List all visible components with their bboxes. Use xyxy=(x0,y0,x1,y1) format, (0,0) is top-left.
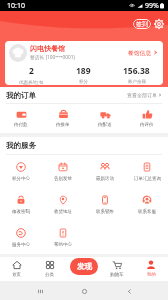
staticText: 告别发放 xyxy=(54,176,72,182)
button[interactable]: 积分中心 xyxy=(0,155,42,188)
staticText: 最新活动 xyxy=(96,176,114,182)
staticText: 待评价 xyxy=(140,122,154,128)
staticText: 我的 xyxy=(147,272,156,278)
staticText: 账户余额 xyxy=(128,79,146,85)
button[interactable]: 我的 xyxy=(134,257,168,281)
button[interactable]: Recent apps xyxy=(35,286,45,296)
staticText: 积分中心 xyxy=(12,176,30,182)
button[interactable]: 帮助中心 xyxy=(42,221,84,254)
staticText: 99% xyxy=(145,1,159,11)
button[interactable]: Home xyxy=(79,286,89,296)
staticText: 购物车 xyxy=(110,272,124,278)
button[interactable]: 待评价 xyxy=(126,104,168,133)
button[interactable]: 189 xyxy=(57,64,110,85)
staticText: 收货地址 xyxy=(54,209,72,215)
button[interactable]: 首页 xyxy=(0,257,33,281)
staticText: 联系销售 xyxy=(96,209,114,215)
staticText: 闪电快餐馆 xyxy=(30,44,65,53)
staticText: 待付款 xyxy=(14,122,28,128)
staticText: 餐馆信息 xyxy=(128,49,152,56)
staticText: 联系客服 xyxy=(138,209,156,215)
staticText: 首页 xyxy=(12,272,21,278)
button[interactable]: 签到 xyxy=(133,19,151,29)
staticText: 查看全部订单 xyxy=(127,92,157,98)
staticText: 修改密码 xyxy=(12,209,30,215)
staticText: 待配送 xyxy=(98,122,112,128)
staticText: 优惠券/红包 xyxy=(19,79,44,85)
staticText: 签到 xyxy=(136,20,148,28)
staticText: 待接单 xyxy=(56,122,70,128)
button[interactable]: Back xyxy=(124,286,134,296)
staticText: 订单汇总查询 xyxy=(134,176,161,182)
staticText: 服务中心 xyxy=(12,242,30,248)
button[interactable]: 订单汇总查询 xyxy=(126,155,168,188)
staticText: 2 xyxy=(29,65,34,77)
staticText: 我的服务 xyxy=(6,141,36,150)
button[interactable]: 待接单 xyxy=(42,104,84,133)
staticText: 整店长 (100••••0001) xyxy=(30,54,75,61)
staticText: 10:10 xyxy=(7,1,25,11)
button[interactable]: 收货地址 xyxy=(42,188,84,221)
staticText: 我的订单 xyxy=(6,91,36,100)
button[interactable]: 服务中心 xyxy=(0,221,42,254)
button[interactable]: 待配送 xyxy=(84,104,126,133)
staticText: 发现 xyxy=(77,262,92,271)
staticText: 积分 xyxy=(79,79,88,85)
button[interactable]: Settings xyxy=(154,19,164,29)
button[interactable]: 修改密码 xyxy=(0,188,42,221)
button[interactable]: 餐馆信息 xyxy=(128,49,158,56)
staticText: 189 xyxy=(76,65,91,77)
button[interactable]: 待付款 xyxy=(0,104,42,133)
button[interactable]: 最新活动 xyxy=(84,155,126,188)
button[interactable]: 联系客服 xyxy=(126,188,168,221)
staticText: 分类 xyxy=(45,272,54,278)
button[interactable]: 2 xyxy=(5,64,57,85)
button[interactable]: 购物车 xyxy=(100,257,134,281)
staticText: 156.38 xyxy=(123,65,150,77)
button[interactable]: 156.38 xyxy=(110,64,163,85)
button[interactable]: 查看全部订单 xyxy=(127,92,162,98)
button[interactable]: 告别发放 xyxy=(42,155,84,188)
button[interactable]: 联系销售 xyxy=(84,188,126,221)
staticText: 帮助中心 xyxy=(54,242,72,248)
button[interactable]: 发现 xyxy=(70,258,98,275)
button[interactable]: 分类 xyxy=(33,257,66,281)
